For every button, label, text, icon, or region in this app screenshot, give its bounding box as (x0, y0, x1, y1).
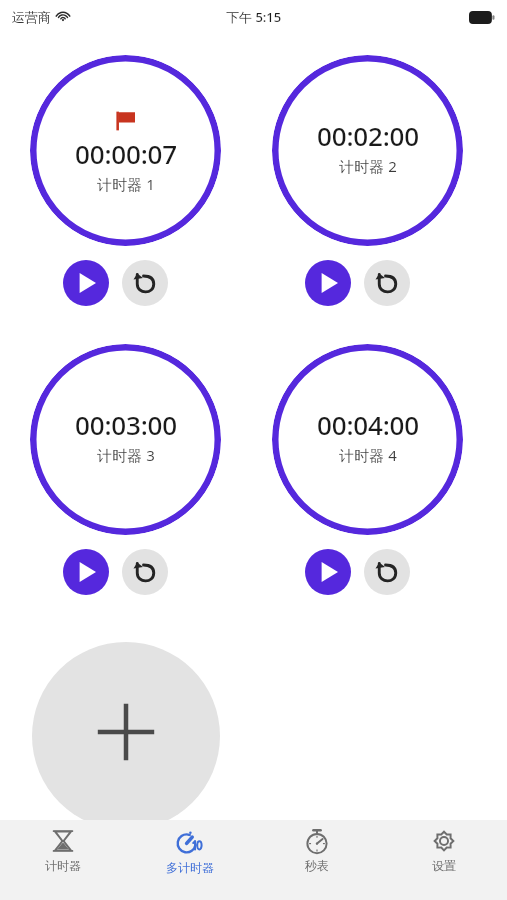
button[interactable]: 计时器 (0, 820, 126, 900)
staticText: 计时器 4 (339, 445, 397, 465)
button[interactable]: Start (305, 549, 351, 595)
staticText: 计时器 (45, 858, 81, 873)
button[interactable]: 00:02:00 (272, 55, 463, 246)
staticText: 计时器 1 (97, 174, 155, 194)
staticText: 秒表 (305, 858, 329, 873)
button[interactable]: Start (63, 549, 109, 595)
button[interactable]: Reset (122, 549, 168, 595)
staticText: 00:02:00 (317, 118, 419, 153)
staticText: 计时器 3 (97, 445, 155, 465)
button[interactable]: Reset (364, 549, 410, 595)
button[interactable]: Reset (122, 260, 168, 306)
button[interactable]: Reset (364, 260, 410, 306)
button[interactable]: 秒表 (253, 820, 380, 900)
staticText: 00:00:07 (75, 136, 177, 171)
button[interactable]: 00:04:00 (272, 344, 463, 535)
button[interactable]: Start (305, 260, 351, 306)
staticText: 运营商 (12, 9, 51, 25)
staticText: 下午 5:15 (226, 8, 282, 26)
button[interactable]: Start (63, 260, 109, 306)
button[interactable]: 00:00:07 (30, 55, 221, 246)
staticText: 00:03:00 (75, 407, 177, 442)
button[interactable]: 00:03:00 (30, 344, 221, 535)
button[interactable]: Add timer (32, 642, 220, 830)
button[interactable]: 设置 (380, 820, 507, 900)
staticText: 计时器 2 (339, 156, 397, 176)
staticText: 多计时器 (166, 860, 214, 875)
staticText: 设置 (432, 858, 456, 873)
button[interactable]: 多计时器 (126, 820, 253, 900)
staticText: 00:04:00 (317, 407, 419, 442)
